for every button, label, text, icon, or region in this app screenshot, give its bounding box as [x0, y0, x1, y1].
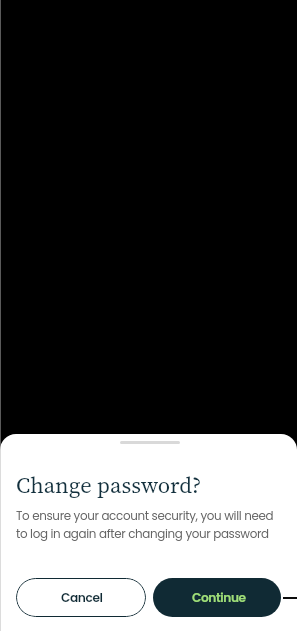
staticText: Change password? [16, 470, 202, 501]
staticText: To ensure your account security, you wil… [16, 508, 278, 542]
button[interactable]: Cancel [16, 578, 146, 617]
button[interactable]: Continue [153, 578, 281, 617]
staticText: Continue [192, 589, 246, 606]
staticText: Cancel [61, 589, 103, 606]
